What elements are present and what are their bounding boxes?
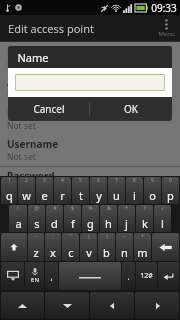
button[interactable]: 2 — [18, 177, 35, 204]
button[interactable]: Voice input — [25, 262, 44, 290]
staticText: 8 — [133, 177, 136, 184]
staticText: e — [41, 188, 48, 203]
button[interactable]: Right — [135, 292, 179, 319]
button[interactable]: # — [46, 205, 63, 232]
button[interactable]: 0 — [162, 177, 179, 204]
button[interactable]: 3 — [36, 177, 53, 204]
button[interactable]: & — [100, 205, 117, 232]
staticText: u — [113, 188, 120, 203]
staticText: m — [137, 245, 148, 260]
staticText: * — [125, 205, 128, 212]
staticText: Menu — [158, 30, 175, 38]
staticText: Not set — [7, 120, 36, 132]
button[interactable]: ' — [45, 233, 61, 261]
staticText: + — [141, 233, 144, 240]
staticText: 09:33 — [151, 1, 177, 15]
button[interactable]: Proxy — [0, 104, 180, 135]
button[interactable]: ! — [9, 205, 27, 232]
staticText: Name — [7, 44, 37, 58]
staticText: 0 — [169, 177, 172, 184]
staticText: v — [86, 245, 92, 260]
staticText: OK — [124, 102, 138, 116]
staticText: ? — [143, 205, 146, 212]
button[interactable]: + — [134, 233, 151, 261]
button[interactable]: Shift — [1, 233, 27, 261]
staticText: n — [121, 245, 128, 260]
staticText: $ — [71, 205, 74, 212]
staticText: Username — [7, 137, 59, 151]
staticText: # — [53, 205, 57, 212]
staticText: Not set — [7, 89, 36, 101]
button[interactable]: 5 — [72, 177, 89, 204]
button[interactable]: * — [118, 205, 135, 232]
staticText: 6 — [97, 177, 100, 184]
staticText: - — [35, 233, 37, 240]
staticText: Password — [7, 169, 55, 176]
button[interactable]: 7 — [108, 177, 125, 204]
staticText: o — [149, 188, 156, 203]
staticText: ) — [106, 233, 108, 240]
button[interactable]: Name — [0, 42, 180, 73]
button[interactable]: @ — [28, 205, 45, 232]
button[interactable]: % — [82, 205, 99, 232]
button[interactable]: 9 — [144, 177, 161, 204]
button[interactable]: Backspace — [152, 233, 179, 261]
staticText: 5 — [79, 177, 82, 184]
button[interactable]: Menu — [152, 15, 180, 42]
staticText: k — [142, 216, 148, 231]
button[interactable]: ( — [80, 233, 97, 261]
button[interactable]: 12# — [136, 262, 157, 290]
staticText: a — [15, 216, 22, 231]
button[interactable]: $ — [64, 205, 81, 232]
staticText: & — [107, 205, 111, 212]
staticText: , — [50, 271, 53, 282]
staticText: y — [96, 188, 102, 203]
button[interactable]: Left — [90, 292, 134, 319]
staticText: w — [22, 188, 31, 203]
staticText: 7 — [115, 177, 118, 184]
button[interactable]: OK — [90, 97, 172, 121]
button[interactable]: Enter — [158, 262, 179, 290]
button[interactable]: Password — [0, 167, 180, 176]
staticText: 9 — [151, 177, 154, 184]
button[interactable]: " — [62, 233, 79, 261]
staticText: ( — [88, 233, 90, 240]
staticText: 4 — [61, 177, 64, 184]
button[interactable]: Down — [45, 292, 89, 319]
staticText: Not set — [7, 58, 36, 70]
staticText: ' — [52, 233, 54, 240]
staticText: 1 — [8, 177, 11, 184]
button[interactable]: Cancel — [8, 97, 89, 121]
button[interactable]: / — [154, 205, 171, 232]
button[interactable]: ~ — [116, 233, 133, 261]
staticText: p — [167, 188, 174, 203]
button[interactable]: Up — [1, 292, 44, 319]
staticText: / — [162, 205, 164, 212]
staticText: x — [50, 245, 56, 260]
button[interactable]: 1 — [1, 177, 17, 204]
button[interactable]: 6 — [90, 177, 107, 204]
button[interactable]: . — [122, 262, 135, 290]
staticText: g — [87, 216, 94, 231]
button[interactable]: APN — [0, 73, 180, 104]
staticText: @ — [34, 205, 39, 212]
staticText: Name — [17, 50, 49, 65]
staticText: Cancel — [33, 102, 65, 116]
staticText: f — [71, 216, 75, 231]
button[interactable]: 8 — [126, 177, 143, 204]
button[interactable]: ) — [98, 233, 115, 261]
staticText: r — [60, 188, 65, 203]
button[interactable]: Username — [0, 135, 180, 166]
button[interactable]: Space — [59, 262, 121, 290]
staticText: j — [125, 216, 128, 231]
button[interactable]: , — [45, 262, 58, 290]
button[interactable] — [15, 74, 165, 91]
staticText: EN — [31, 276, 39, 284]
button[interactable]: 4 — [54, 177, 71, 204]
button[interactable]: - — [28, 233, 44, 261]
button[interactable]: ? — [136, 205, 153, 232]
staticText: % — [88, 205, 93, 212]
staticText: APN — [7, 75, 29, 89]
staticText: Not set — [7, 151, 36, 163]
button[interactable]: Hide keyboard — [1, 262, 24, 290]
